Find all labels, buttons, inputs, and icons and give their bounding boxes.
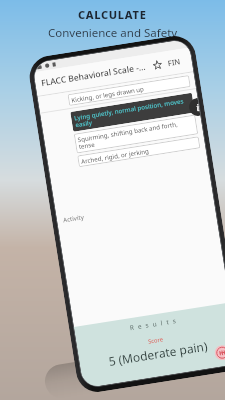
staticText: FLACC Behavioral Scale -… [40, 61, 147, 89]
staticText: Lying quietly, normal position, moves ea… [73, 95, 192, 129]
staticText: Activity [62, 212, 84, 223]
staticText: CALCULATE [78, 7, 147, 22]
staticText: R e s u l t s [129, 316, 178, 332]
button[interactable]: Arched, rigid, or jerking [77, 136, 200, 167]
staticText: Score [147, 335, 165, 346]
button[interactable]: Info [188, 98, 200, 117]
staticText: Kicking, or legs drawn up [71, 84, 145, 104]
staticText: FIN [167, 56, 181, 68]
staticText: Squirming, shifting back and forth, tens… [77, 117, 195, 151]
button[interactable]: App badge [214, 344, 225, 361]
button[interactable]: Squirming, shifting back and forth, tens… [74, 114, 198, 153]
button[interactable]: Lying quietly, normal position, moves ea… [70, 93, 195, 132]
button[interactable]: Favorite [149, 57, 166, 74]
button[interactable]: Kicking, or legs drawn up [67, 75, 191, 106]
staticText: i [195, 101, 200, 113]
staticText: Convenience and Safety [48, 25, 178, 41]
staticText: Arched, rigid, or jerking [80, 146, 150, 165]
staticText: 5 (Moderate pain) [107, 337, 209, 369]
button[interactable]: FIN [166, 56, 182, 68]
